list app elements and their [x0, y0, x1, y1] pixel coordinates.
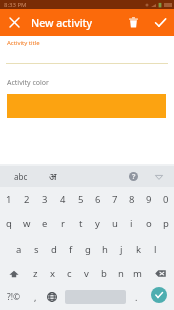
staticText: 0	[163, 193, 169, 206]
button[interactable]: w	[18, 211, 36, 235]
staticText: i	[130, 217, 133, 230]
button[interactable]: 7	[106, 187, 123, 211]
button[interactable]: ?!©	[0, 284, 28, 310]
staticText: f	[69, 243, 73, 256]
staticText: 5	[78, 193, 84, 206]
staticText: Activity title	[7, 39, 40, 47]
staticText: z	[33, 267, 38, 280]
button[interactable]: 1	[0, 187, 18, 211]
button[interactable]: Enter	[143, 284, 174, 310]
button[interactable]: v	[78, 261, 95, 286]
button[interactable]: 0	[157, 187, 174, 211]
button[interactable]: abc	[0, 166, 42, 187]
staticText: 9	[146, 193, 152, 206]
button[interactable]: More options	[144, 166, 174, 187]
staticText: e	[42, 217, 48, 230]
button[interactable]: 3	[36, 187, 54, 211]
button[interactable]: m	[129, 261, 146, 286]
button[interactable]: .	[129, 284, 143, 310]
button[interactable]: q	[0, 211, 18, 235]
staticText: New activity	[31, 16, 93, 30]
button[interactable]: r	[54, 211, 72, 235]
button[interactable]: b	[95, 261, 112, 286]
button[interactable]: 4	[54, 187, 72, 211]
button[interactable]: 5	[72, 187, 89, 211]
button[interactable]: 8	[123, 187, 140, 211]
staticText: r	[61, 217, 65, 230]
staticText: Activity color	[7, 78, 49, 88]
staticText: t	[79, 217, 83, 230]
staticText: 8	[129, 193, 135, 206]
button[interactable]: j	[113, 237, 130, 261]
staticText: .	[135, 291, 138, 303]
button[interactable]: d	[45, 237, 62, 261]
button[interactable]: k	[130, 237, 147, 261]
button[interactable]: 9	[140, 187, 157, 211]
button[interactable]: ,	[28, 284, 43, 310]
staticText: d	[51, 243, 57, 256]
staticText: ?!©	[7, 291, 21, 303]
button[interactable]: c	[61, 261, 78, 286]
button[interactable]: Close	[0, 9, 29, 36]
staticText: abc	[14, 171, 28, 182]
button[interactable]: Delete	[120, 9, 146, 36]
staticText: b	[101, 267, 107, 280]
button[interactable]: Help	[122, 166, 144, 187]
staticText: o	[146, 217, 152, 230]
staticText: g	[85, 243, 91, 256]
staticText: w	[23, 217, 31, 230]
button[interactable]: o	[140, 211, 157, 235]
staticText: a	[16, 243, 22, 256]
button[interactable]: f	[62, 237, 79, 261]
staticText: ?	[132, 172, 136, 181]
button[interactable]: l	[147, 237, 164, 261]
staticText: p	[163, 217, 169, 230]
button[interactable]: Change language	[43, 284, 61, 310]
button[interactable]: अ	[42, 166, 64, 187]
staticText: u	[112, 217, 118, 230]
staticText: 1	[6, 193, 12, 206]
staticText: x	[50, 267, 56, 280]
staticText: v	[84, 267, 89, 280]
button[interactable]: g	[79, 237, 96, 261]
staticText: 6	[95, 193, 101, 206]
button[interactable]: n	[112, 261, 129, 286]
staticText: l	[154, 243, 157, 256]
button[interactable]: 2	[18, 187, 36, 211]
button[interactable]: Backspace	[146, 261, 174, 286]
button[interactable]: t	[72, 211, 89, 235]
staticText: ,	[34, 291, 37, 303]
staticText: j	[120, 243, 123, 256]
staticText: n	[118, 267, 124, 280]
staticText: s	[34, 243, 39, 256]
button[interactable]: Save	[146, 9, 174, 36]
staticText: m	[133, 267, 142, 280]
staticText: अ	[49, 170, 57, 183]
staticText: 7	[112, 193, 118, 206]
button[interactable]: e	[36, 211, 54, 235]
button[interactable]: s	[28, 237, 45, 261]
button[interactable]: p	[157, 211, 174, 235]
staticText: 2	[24, 193, 30, 206]
button[interactable]: Shift	[0, 261, 27, 286]
staticText: y	[95, 217, 100, 230]
button[interactable]: i	[123, 211, 140, 235]
staticText: 8:33 PM	[4, 1, 27, 9]
staticText: q	[6, 217, 12, 230]
button[interactable]: 6	[89, 187, 106, 211]
staticText: 3	[42, 193, 48, 206]
button[interactable]: u	[106, 211, 123, 235]
button[interactable]: y	[89, 211, 106, 235]
staticText: 4	[60, 193, 66, 206]
staticText: h	[102, 243, 108, 256]
staticText: k	[136, 243, 142, 256]
button[interactable]: a	[10, 237, 28, 261]
button[interactable]: h	[96, 237, 113, 261]
staticText: c	[67, 267, 72, 280]
button[interactable]: x	[44, 261, 61, 286]
button[interactable]: z	[27, 261, 44, 286]
